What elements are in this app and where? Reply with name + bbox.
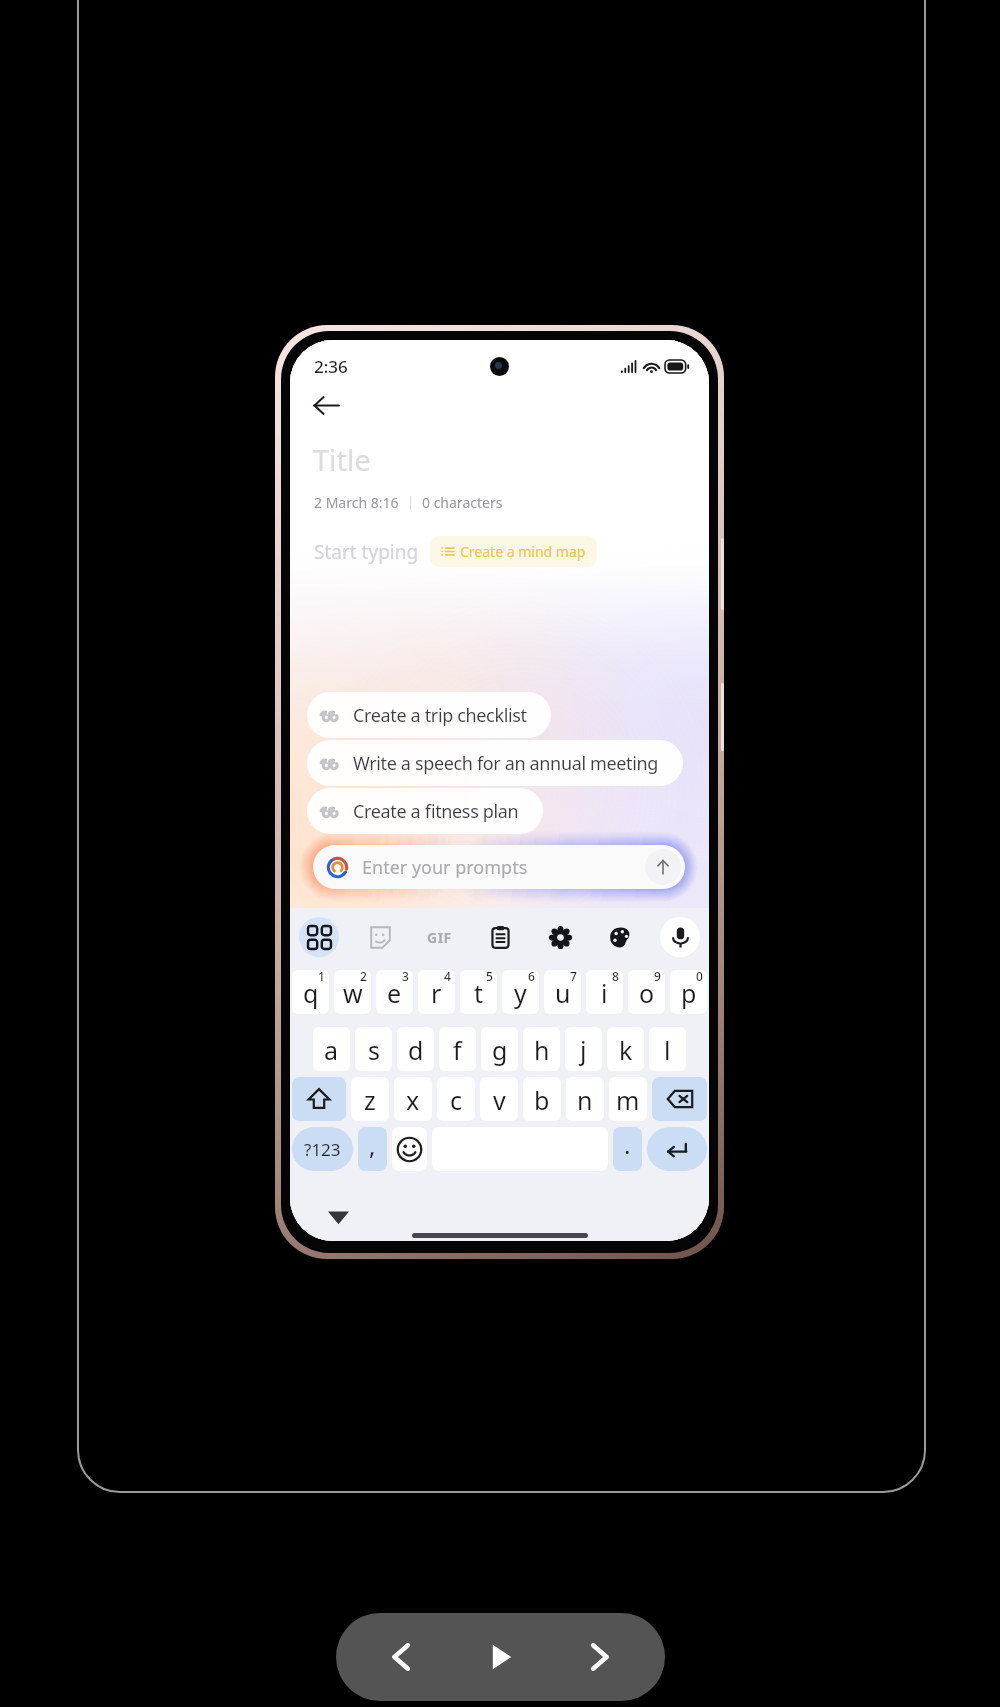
button[interactable]: e <box>376 970 413 1014</box>
button[interactable]: Theme <box>600 917 640 957</box>
staticText: a <box>324 1033 339 1067</box>
staticText: y <box>514 976 527 1010</box>
button[interactable]: Send <box>645 849 681 885</box>
button[interactable]: w <box>334 970 371 1014</box>
button[interactable]: o <box>628 970 665 1014</box>
staticText: d <box>408 1033 424 1067</box>
staticText: i <box>601 976 608 1010</box>
button[interactable]: h <box>523 1027 560 1071</box>
button[interactable]: a <box>313 1027 350 1071</box>
button[interactable]: Comma <box>358 1127 387 1171</box>
button[interactable]: k <box>607 1027 644 1071</box>
staticText: b <box>534 1083 550 1117</box>
staticText: Enter your prompts <box>362 855 528 880</box>
button[interactable]: Create a trip checklist <box>307 692 551 738</box>
staticText: 1 <box>318 970 325 984</box>
staticText: GIF <box>427 928 452 947</box>
button[interactable]: Create a fitness plan <box>307 788 543 834</box>
staticText: t <box>474 976 484 1010</box>
button[interactable]: x <box>394 1077 432 1121</box>
button[interactable]: r <box>418 970 455 1014</box>
staticText: Title <box>313 440 371 479</box>
staticText: w <box>343 976 363 1010</box>
button[interactable]: Apps <box>299 917 339 957</box>
button[interactable]: Hide keyboard <box>323 1202 353 1232</box>
staticText: v <box>493 1083 506 1117</box>
staticText: k <box>619 1033 633 1067</box>
button[interactable]: Shift <box>292 1077 346 1121</box>
staticText: q <box>303 976 319 1010</box>
staticText: f <box>453 1033 462 1067</box>
button[interactable]: c <box>437 1077 475 1121</box>
staticText: ?123 <box>304 1138 341 1161</box>
staticText: n <box>577 1083 593 1117</box>
staticText: u <box>555 976 571 1010</box>
button[interactable]: Enter <box>647 1127 707 1171</box>
button[interactable]: j <box>565 1027 602 1071</box>
button[interactable]: Create a mind map <box>430 536 597 567</box>
staticText: Write a speech for an annual meeting <box>353 751 659 776</box>
button[interactable]: Backspace <box>652 1077 707 1121</box>
staticText: g <box>492 1033 508 1067</box>
button[interactable]: z <box>351 1077 389 1121</box>
staticText: Create a fitness plan <box>353 799 519 824</box>
button[interactable]: f <box>439 1027 476 1071</box>
staticText: Create a trip checklist <box>353 703 527 728</box>
button[interactable]: y <box>502 970 539 1014</box>
staticText: 0 <box>696 970 703 984</box>
staticText: c <box>450 1083 463 1117</box>
button[interactable]: Emoji <box>392 1127 427 1171</box>
staticText: l <box>664 1033 671 1067</box>
staticText: Start typing <box>314 539 419 565</box>
button[interactable]: m <box>609 1077 647 1121</box>
staticText: o <box>639 976 655 1010</box>
button[interactable]: Settings <box>540 917 580 957</box>
button[interactable]: Clipboard <box>480 917 520 957</box>
staticText: 9 <box>654 970 661 984</box>
staticText: 5 <box>486 970 493 984</box>
button[interactable]: b <box>523 1077 561 1121</box>
button[interactable]: ?123 <box>292 1127 353 1171</box>
staticText: 7 <box>570 970 577 984</box>
button[interactable]: n <box>566 1077 604 1121</box>
button[interactable]: Period <box>613 1127 642 1171</box>
staticText: s <box>368 1033 380 1067</box>
staticText: h <box>534 1033 550 1067</box>
staticText: 8 <box>612 970 619 984</box>
staticText: j <box>580 1033 587 1067</box>
button[interactable]: t <box>460 970 497 1014</box>
staticText: 2 March 8:16 <box>314 493 399 512</box>
staticText: e <box>387 976 402 1010</box>
button[interactable]: l <box>649 1027 686 1071</box>
button[interactable]: Next <box>566 1624 632 1690</box>
button[interactable]: GIF <box>419 917 459 957</box>
button[interactable]: i <box>586 970 623 1014</box>
staticText: 0 characters <box>422 493 503 512</box>
button[interactable]: g <box>481 1027 518 1071</box>
staticText: x <box>406 1083 420 1117</box>
button[interactable]: u <box>544 970 581 1014</box>
button[interactable]: p <box>670 970 707 1014</box>
button[interactable]: Play <box>468 1624 534 1690</box>
staticText: p <box>681 976 697 1010</box>
staticText: 2:36 <box>314 355 348 378</box>
staticText: 2 <box>360 970 367 984</box>
staticText: 4 <box>444 970 451 984</box>
staticText: m <box>616 1083 640 1117</box>
button[interactable]: Voice input <box>660 917 700 957</box>
button[interactable]: Stickers <box>359 917 399 957</box>
button[interactable]: Previous <box>369 1624 435 1690</box>
staticText: 3 <box>402 970 409 984</box>
staticText: r <box>431 976 442 1010</box>
button[interactable]: q <box>292 970 329 1014</box>
button[interactable]: d <box>397 1027 434 1071</box>
staticText: 6 <box>528 970 535 984</box>
button[interactable]: s <box>355 1027 392 1071</box>
button[interactable]: v <box>480 1077 518 1121</box>
staticText: . <box>624 1128 631 1161</box>
staticText: Create a mind map <box>460 542 586 561</box>
button[interactable]: Write a speech for an annual meeting <box>307 740 683 786</box>
button[interactable]: Back <box>304 383 348 427</box>
button[interactable]: Enter your prompts <box>313 845 685 889</box>
